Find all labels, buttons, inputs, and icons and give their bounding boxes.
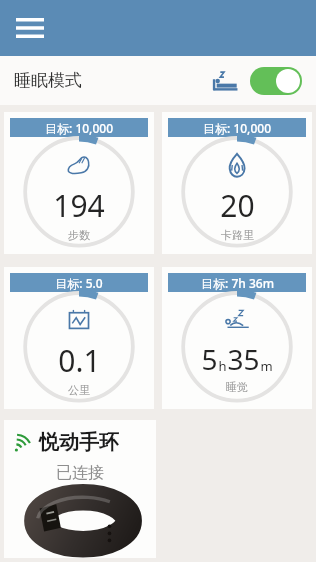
- staticText: 卡路里: [221, 228, 254, 242]
- staticText: 目标: 10,000: [203, 120, 271, 136]
- staticText: h: [218, 357, 227, 375]
- button[interactable]: Sleep mode toggle: [250, 67, 302, 95]
- staticText: 步数: [68, 228, 90, 242]
- staticText: 5: [201, 340, 218, 378]
- staticText: 睡眠模式: [14, 70, 82, 91]
- button[interactable]: 目标: 10,000: [162, 112, 312, 254]
- staticText: 35: [227, 340, 260, 378]
- button[interactable]: 目标: 7h 36m: [162, 267, 312, 409]
- staticText: 睡觉: [226, 380, 248, 394]
- button[interactable]: 悦动手环: [4, 420, 156, 558]
- button[interactable]: 睡眠模式: [0, 56, 316, 105]
- staticText: 公里: [68, 383, 90, 397]
- staticText: 目标: 10,000: [45, 120, 113, 136]
- staticText: 20: [220, 185, 255, 226]
- staticText: m: [260, 357, 273, 375]
- staticText: 已连接: [56, 463, 104, 483]
- staticText: 目标: 7h 36m: [201, 275, 274, 291]
- button[interactable]: 目标: 10,000: [4, 112, 154, 254]
- staticText: 目标: 5.0: [55, 275, 103, 291]
- staticText: 194: [53, 185, 105, 226]
- other: Sleep: [212, 70, 238, 92]
- button[interactable]: Menu: [8, 6, 52, 50]
- staticText: 0.1: [58, 340, 101, 381]
- button[interactable]: 目标: 5.0: [4, 267, 154, 409]
- staticText: 悦动手环: [39, 430, 119, 455]
